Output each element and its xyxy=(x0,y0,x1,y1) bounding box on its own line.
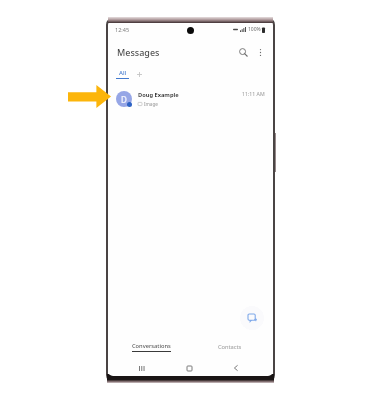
staticText: Image xyxy=(144,101,158,107)
button[interactable]: All xyxy=(115,66,130,82)
staticText: All xyxy=(119,69,127,77)
staticText: 11:11 AM xyxy=(242,90,265,97)
button[interactable]: Back xyxy=(229,361,243,375)
button[interactable]: Contacts xyxy=(190,337,273,357)
staticText: Messages xyxy=(117,46,160,58)
staticText: Contacts xyxy=(218,343,242,351)
button[interactable]: Conversations xyxy=(108,337,190,357)
button[interactable]: Search xyxy=(236,45,250,59)
staticText: Conversations xyxy=(132,342,171,350)
button[interactable]: More options xyxy=(254,46,266,58)
button[interactable]: Home xyxy=(182,361,196,375)
staticText: Doug Example xyxy=(138,91,179,99)
button[interactable]: Add category xyxy=(133,68,145,80)
staticText: 100% xyxy=(248,26,261,33)
button[interactable]: Start new conversation xyxy=(240,306,264,330)
button[interactable]: Recent apps xyxy=(134,361,148,375)
button[interactable]: D xyxy=(108,86,273,112)
staticText: 12:45 xyxy=(115,26,130,33)
staticText: D xyxy=(121,94,127,105)
